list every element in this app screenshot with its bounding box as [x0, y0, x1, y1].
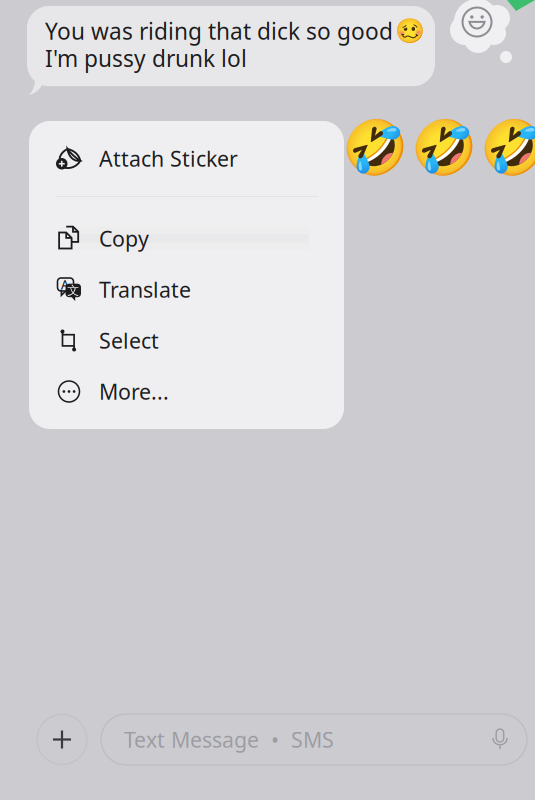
staticText: Translate [99, 275, 191, 304]
staticText: Text Message • SMS [124, 725, 334, 754]
staticText: 文 [67, 283, 79, 298]
staticText: Select [99, 326, 159, 355]
button[interactable]: Select [29, 315, 344, 366]
staticText: More... [99, 377, 169, 406]
staticText: 🥴 [395, 17, 425, 45]
button[interactable]: Attach Sticker [29, 121, 344, 196]
staticText: A [61, 276, 69, 292]
staticText: Attach Sticker [99, 144, 238, 173]
button[interactable]: Copy [29, 213, 344, 264]
staticText: 🤣 [479, 117, 535, 178]
staticText: 🤣 [410, 117, 476, 178]
staticText: Copy [99, 224, 149, 253]
button[interactable]: A [29, 264, 344, 315]
button[interactable]: More... [29, 366, 344, 417]
staticText: 🤣 [341, 117, 407, 178]
button[interactable]: Text Message • SMS [101, 714, 527, 765]
staticText: You was riding that dick so good [45, 16, 393, 46]
button[interactable]: Add attachment [37, 714, 87, 765]
staticText: I'm pussy drunk lol [45, 43, 247, 73]
